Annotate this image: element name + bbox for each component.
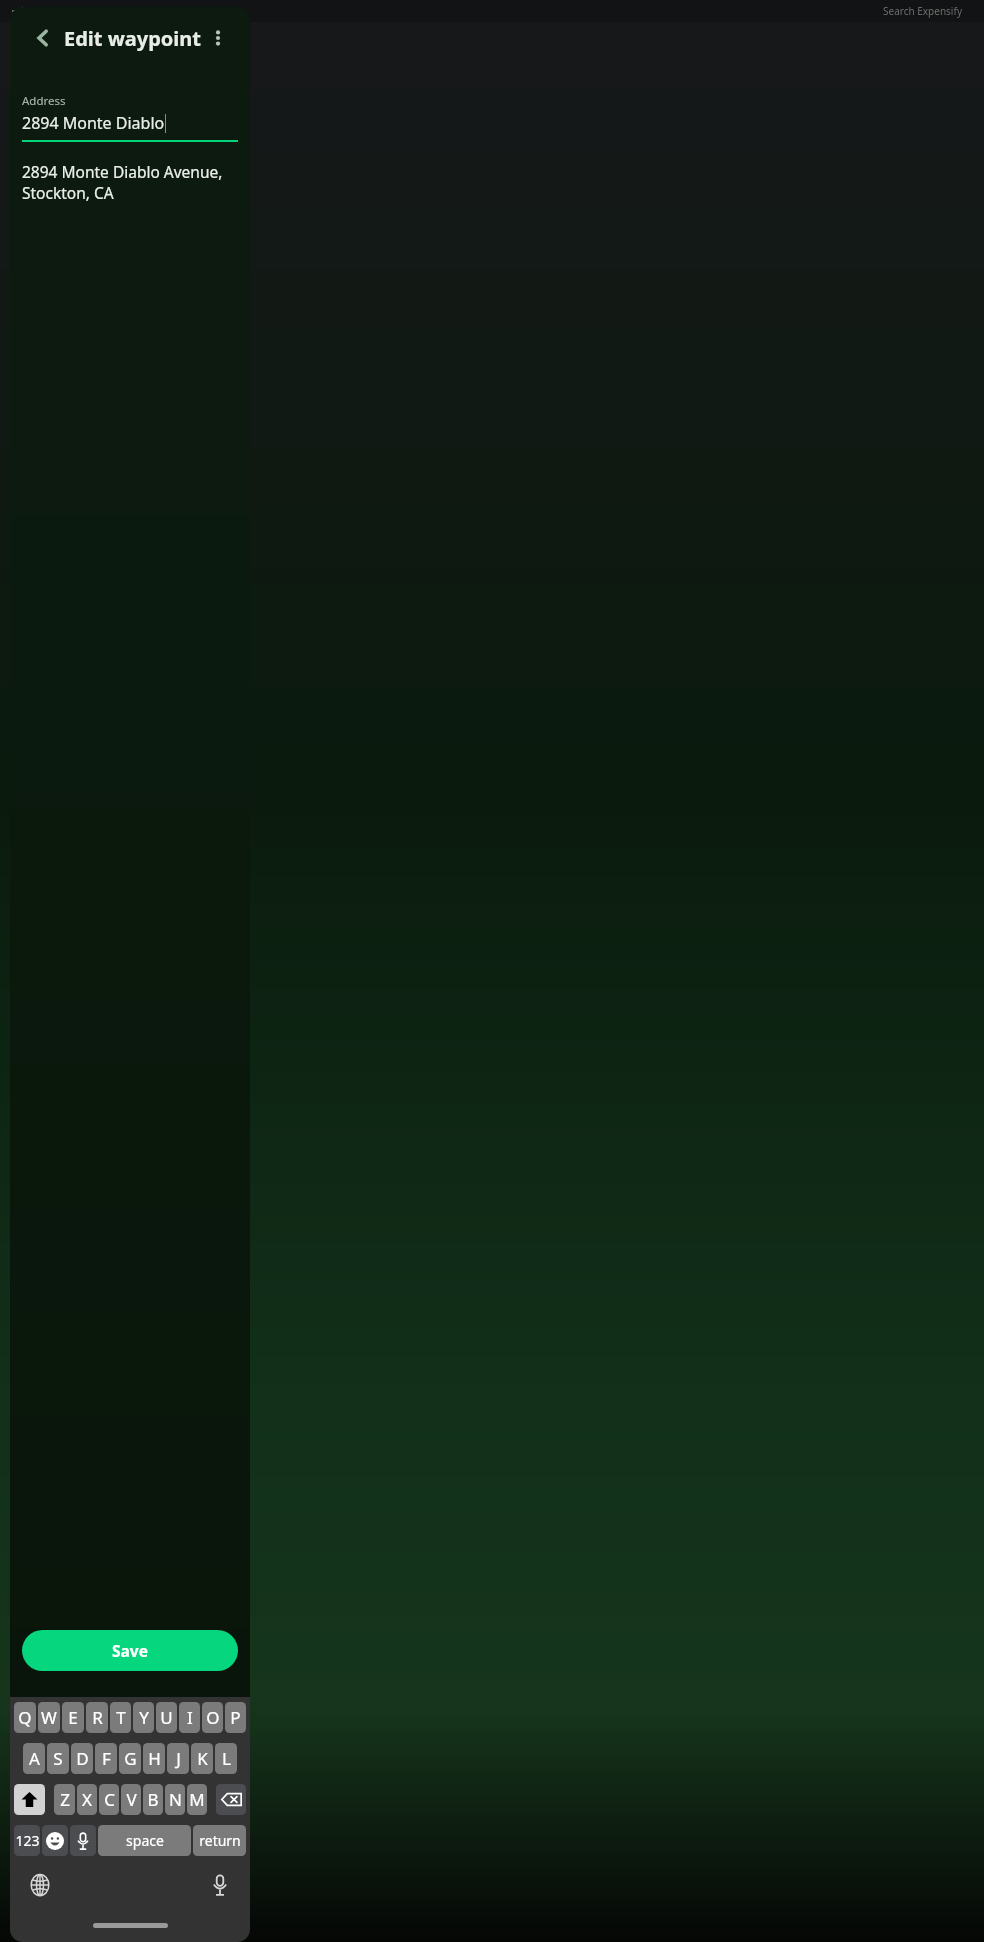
button[interactable]: L [215,1743,237,1774]
button[interactable]: J [167,1743,189,1774]
button[interactable]: Dictate [203,1868,237,1902]
button[interactable]: Y [133,1702,154,1733]
button[interactable]: return [193,1825,246,1856]
staticText: D [76,1747,89,1770]
button[interactable]: Backspace [216,1784,246,1815]
staticText: H [148,1747,161,1770]
staticText: Save [112,1640,148,1661]
staticText: J [176,1747,181,1770]
staticText: Z [60,1788,70,1811]
staticText: L [222,1747,231,1770]
staticText: M [189,1788,205,1811]
staticText: N [169,1788,182,1811]
button[interactable]: U [156,1702,177,1733]
staticText: E [68,1706,78,1729]
staticText: return [199,1831,241,1850]
button[interactable]: More options [198,18,238,58]
staticText: B [147,1788,159,1811]
staticText: P [230,1706,241,1729]
staticText: S [53,1747,63,1770]
button[interactable]: V [121,1784,141,1815]
staticText: X [82,1788,92,1811]
staticText: T [116,1706,126,1729]
button[interactable]: Emoji [42,1825,68,1856]
button[interactable]: B [143,1784,163,1815]
button[interactable]: T [110,1702,131,1733]
staticText: I [187,1706,193,1729]
staticText: Q [18,1706,32,1729]
button[interactable]: X [77,1784,97,1815]
button[interactable]: F [95,1743,117,1774]
button[interactable]: W [38,1702,60,1733]
button[interactable]: space [98,1825,191,1856]
button[interactable]: O [202,1702,223,1733]
button[interactable]: H [143,1743,165,1774]
button[interactable]: E [62,1702,84,1733]
staticText: C [104,1788,115,1811]
staticText: Y [139,1706,149,1729]
staticText: 2894 Monte Diablo [22,112,165,134]
staticText: 2894 Monte Diablo Avenue, Stockton, CA [22,161,238,203]
button[interactable]: 123 [14,1825,40,1856]
staticText: Search Expensify [883,4,962,18]
staticText: W [41,1706,57,1729]
button[interactable]: Back [26,21,60,55]
button[interactable]: P [225,1702,246,1733]
button[interactable]: Q [14,1702,36,1733]
button[interactable]: R [86,1702,108,1733]
button[interactable]: Z [54,1784,75,1815]
button[interactable]: A [23,1743,45,1774]
button[interactable]: Shift [14,1784,45,1815]
button[interactable]: Save [22,1630,238,1671]
button[interactable]: N [165,1784,185,1815]
staticText: V [126,1788,137,1811]
button[interactable]: G [119,1743,141,1774]
button[interactable]: M [187,1784,207,1815]
staticText: 123 [15,1831,40,1850]
staticText: space [126,1831,164,1850]
staticText: K [197,1747,208,1770]
staticText: O [206,1706,220,1729]
staticText: Edit waypoint [64,25,202,52]
button[interactable]: D [71,1743,93,1774]
button[interactable]: Voice input [70,1825,96,1856]
button[interactable]: C [99,1784,119,1815]
staticText: F [102,1747,111,1770]
button[interactable]: I [179,1702,200,1733]
staticText: Address [22,93,66,109]
button[interactable]: Change keyboard language [23,1868,57,1902]
staticText: R [92,1706,103,1729]
button[interactable]: 2894 Monte Diablo Avenue, Stockton, CA [22,161,238,203]
button[interactable]: S [47,1743,69,1774]
staticText: U [160,1706,173,1729]
button[interactable]: K [191,1743,213,1774]
staticText: A [29,1747,40,1770]
staticText: G [124,1747,137,1770]
